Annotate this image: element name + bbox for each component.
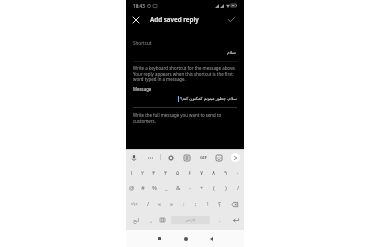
button[interactable]: Enter bbox=[228, 212, 244, 228]
button[interactable]: @ bbox=[126, 180, 137, 196]
button[interactable]: Stickers bbox=[213, 152, 224, 163]
button[interactable]: + bbox=[196, 180, 208, 196]
button[interactable]: # bbox=[137, 180, 148, 196]
staticText: ) bbox=[225, 184, 227, 192]
staticText: _ bbox=[165, 184, 168, 192]
button[interactable]: » bbox=[166, 196, 178, 212]
staticText: / bbox=[147, 200, 150, 208]
button[interactable]: « bbox=[154, 196, 166, 212]
staticText: ۳ bbox=[152, 169, 156, 176]
staticText: # bbox=[141, 184, 145, 192]
staticText: GIF bbox=[200, 155, 207, 161]
button[interactable]: More bbox=[145, 152, 156, 163]
button[interactable]: _ bbox=[160, 180, 172, 196]
staticText: ابج bbox=[133, 217, 140, 223]
staticText: 18:43 bbox=[133, 3, 145, 9]
button[interactable]: ؟ bbox=[214, 196, 226, 212]
button[interactable]: / bbox=[143, 196, 154, 212]
button[interactable]: ۶ bbox=[184, 164, 196, 180]
button[interactable]: Expand toolbar bbox=[231, 153, 240, 162]
staticText: + bbox=[200, 184, 204, 192]
staticText: Write the full message you want to send … bbox=[133, 112, 222, 118]
staticText: ( bbox=[213, 184, 215, 192]
button[interactable]: % bbox=[148, 180, 160, 196]
staticText: سلام، چطور میتونم کمکتون کنم؟ bbox=[180, 96, 237, 102]
button[interactable]: ( bbox=[208, 180, 220, 196]
button[interactable]: =\< bbox=[126, 196, 143, 212]
button[interactable]: Settings bbox=[165, 152, 176, 163]
staticText: - bbox=[189, 184, 191, 192]
staticText: % bbox=[152, 184, 157, 192]
staticText: =\< bbox=[131, 201, 138, 207]
staticText: Message bbox=[133, 86, 152, 92]
staticText: Write a keyboard shortcut for the messag… bbox=[133, 65, 236, 71]
button[interactable]: Home bbox=[179, 232, 192, 245]
staticText: ۹ bbox=[224, 169, 228, 176]
staticText: ۸ bbox=[212, 169, 216, 176]
staticText: ۰ bbox=[236, 169, 240, 176]
staticText: ! bbox=[207, 200, 209, 208]
staticText: ۲ bbox=[141, 169, 145, 176]
button[interactable]: ; bbox=[190, 196, 202, 212]
staticText: فارسی bbox=[185, 218, 196, 222]
staticText: ، bbox=[150, 217, 152, 224]
staticText: ۶ bbox=[188, 169, 192, 176]
button[interactable]: : bbox=[178, 196, 190, 212]
staticText: customers. bbox=[133, 118, 156, 124]
staticText: Add saved reply bbox=[150, 15, 199, 24]
staticText: Your reply appears when this shortcut is… bbox=[133, 71, 233, 77]
button[interactable]: ۲ bbox=[137, 164, 148, 180]
staticText: & bbox=[176, 184, 181, 192]
button[interactable]: ۵ bbox=[172, 164, 184, 180]
button[interactable]: Recents bbox=[153, 232, 166, 245]
button[interactable]: & bbox=[172, 180, 184, 196]
staticText: » bbox=[170, 200, 174, 208]
staticText: سلام bbox=[227, 50, 237, 55]
staticText: ؟ bbox=[218, 201, 222, 208]
button[interactable]: فارسی bbox=[171, 212, 210, 228]
button[interactable]: Save bbox=[225, 13, 238, 26]
button[interactable]: ۹ bbox=[220, 164, 232, 180]
staticText: ۵ bbox=[176, 169, 180, 176]
button[interactable]: ۰ bbox=[232, 164, 244, 180]
button[interactable]: Close bbox=[129, 13, 142, 26]
button[interactable]: / bbox=[232, 180, 244, 196]
button[interactable]: Back bbox=[205, 232, 218, 245]
button[interactable]: - bbox=[184, 180, 196, 196]
button[interactable]: GIF bbox=[198, 152, 209, 163]
button[interactable]: Backspace bbox=[226, 196, 244, 212]
staticText: ; bbox=[195, 200, 197, 208]
staticText: @ bbox=[129, 184, 135, 192]
staticText: ۴ bbox=[164, 169, 168, 176]
button[interactable]: ! bbox=[202, 196, 214, 212]
button[interactable]: ابج bbox=[126, 212, 146, 228]
button[interactable]: ) bbox=[220, 180, 232, 196]
staticText: ۱ bbox=[130, 169, 134, 176]
staticText: Shortcut bbox=[133, 40, 152, 46]
button[interactable]: ۷ bbox=[196, 164, 208, 180]
button[interactable]: ۳ bbox=[148, 164, 160, 180]
button[interactable]: ۴ bbox=[160, 164, 172, 180]
button[interactable]: Clipboard bbox=[181, 152, 192, 163]
staticText: . bbox=[219, 216, 221, 224]
staticText: « bbox=[158, 200, 162, 208]
button[interactable]: ، bbox=[146, 212, 155, 228]
button[interactable]: ۸ bbox=[208, 164, 220, 180]
staticText: : bbox=[183, 200, 185, 208]
staticText: word typed in a message. bbox=[133, 76, 186, 82]
staticText: ۷ bbox=[200, 169, 204, 176]
staticText: / bbox=[237, 184, 240, 192]
button[interactable]: ۱ bbox=[126, 164, 137, 180]
button[interactable]: Voice input bbox=[128, 152, 139, 163]
button[interactable]: Switch keyboard bbox=[155, 212, 169, 228]
